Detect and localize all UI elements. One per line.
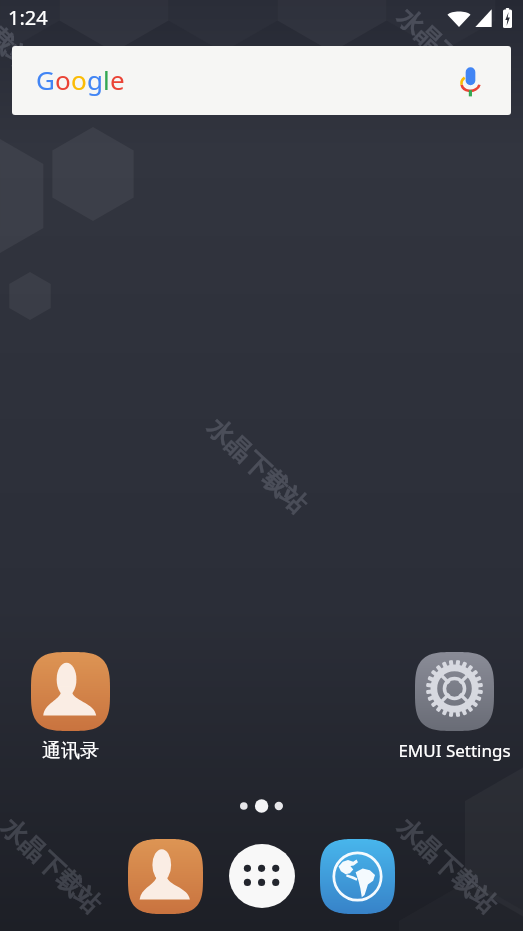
button[interactable]: Contacts xyxy=(128,839,203,914)
staticText: 1:24 xyxy=(8,4,48,31)
staticText: EMUI Settings xyxy=(398,739,511,762)
staticText: 水晶下载站 xyxy=(391,812,503,920)
staticText: e xyxy=(110,62,125,97)
staticText: 水晶下载站 xyxy=(201,412,313,520)
button[interactable]: Browser xyxy=(320,839,395,914)
button[interactable]: 通讯录 xyxy=(1,652,140,763)
staticText: G xyxy=(36,62,55,97)
staticText: 通讯录 xyxy=(42,739,99,763)
staticText: 水晶下载站 xyxy=(391,2,503,110)
staticText: l xyxy=(103,62,110,97)
staticText: 水晶下载站 xyxy=(0,0,39,78)
button[interactable]: EMUI Settings xyxy=(385,652,523,762)
button[interactable]: All apps xyxy=(229,844,295,908)
staticText: g xyxy=(87,62,103,97)
button[interactable]: Google search xyxy=(12,46,511,115)
staticText: o xyxy=(71,62,87,97)
staticText: o xyxy=(55,62,71,97)
staticText: 水晶下载站 xyxy=(0,812,107,920)
button[interactable]: Voice search xyxy=(449,60,491,102)
